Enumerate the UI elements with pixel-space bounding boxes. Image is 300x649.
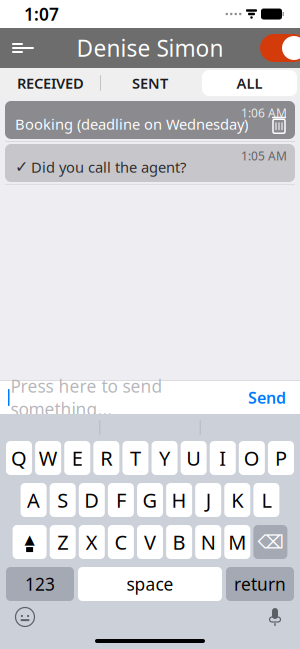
- button[interactable]: Send: [242, 381, 292, 414]
- staticText: B: [173, 529, 186, 555]
- button[interactable]: Y: [152, 441, 178, 475]
- button[interactable]: R: [93, 441, 119, 475]
- staticText: K: [231, 487, 243, 513]
- button[interactable]: P: [268, 441, 294, 475]
- button[interactable]: X: [79, 525, 105, 559]
- staticText: Did you call the agent?: [31, 157, 186, 177]
- staticText: SENT: [132, 73, 168, 93]
- button[interactable]: G: [137, 483, 163, 517]
- button[interactable]: C: [108, 525, 134, 559]
- staticText: D: [84, 487, 99, 513]
- button[interactable]: F: [108, 483, 134, 517]
- button[interactable]: U: [181, 441, 207, 475]
- button[interactable]: Delete: [253, 525, 287, 559]
- staticText: L: [261, 487, 271, 513]
- staticText: Q: [11, 445, 27, 471]
- button[interactable]: 1:06 AM: [0, 101, 300, 139]
- button[interactable]: SENT: [100, 69, 200, 97]
- staticText: ✓: [15, 158, 28, 176]
- staticText: S: [57, 487, 68, 513]
- button[interactable]: return: [226, 567, 294, 601]
- staticText: O: [244, 445, 260, 471]
- staticText: J: [206, 487, 211, 513]
- button[interactable]: Dictate: [258, 600, 292, 634]
- staticText: Press here to send something...: [10, 374, 162, 420]
- button[interactable]: W: [35, 441, 61, 475]
- button[interactable]: O: [239, 441, 265, 475]
- staticText: X: [86, 529, 98, 555]
- staticText: U: [186, 445, 201, 471]
- button[interactable]: 1:05 AM: [0, 144, 300, 182]
- button[interactable]: T: [122, 441, 148, 475]
- button[interactable]: Z: [50, 525, 76, 559]
- staticText: RECEIVED: [17, 73, 84, 93]
- button[interactable]: V: [137, 525, 163, 559]
- staticText: N: [201, 529, 216, 555]
- button[interactable]: D: [79, 483, 105, 517]
- staticText: Y: [159, 445, 170, 471]
- staticText: P: [275, 445, 287, 471]
- button[interactable]: N: [195, 525, 221, 559]
- button[interactable]: space: [78, 567, 222, 601]
- staticText: T: [130, 445, 141, 471]
- button[interactable]: ALL: [200, 69, 299, 97]
- button[interactable]: K: [224, 483, 250, 517]
- button[interactable]: M: [224, 525, 250, 559]
- staticText: ⌫: [257, 531, 283, 553]
- button[interactable]: I: [210, 441, 236, 475]
- staticText: Z: [57, 529, 68, 555]
- button[interactable]: S: [50, 483, 76, 517]
- button[interactable]: RECEIVED: [1, 69, 100, 97]
- staticText: 1:06 AM: [241, 105, 287, 121]
- button[interactable]: Emoji: [8, 600, 42, 634]
- button[interactable]: J: [195, 483, 221, 517]
- staticText: A: [27, 487, 40, 513]
- button[interactable]: B: [166, 525, 192, 559]
- staticText: 1:07: [24, 2, 59, 25]
- staticText: return: [234, 572, 286, 595]
- staticText: E: [72, 445, 83, 471]
- staticText: H: [172, 487, 187, 513]
- button[interactable]: E: [64, 441, 90, 475]
- button[interactable]: 123: [6, 567, 74, 601]
- button[interactable]: Shift: [13, 525, 47, 559]
- button[interactable]: L: [253, 483, 279, 517]
- staticText: M: [228, 529, 246, 555]
- button[interactable]: Toggle: [260, 28, 300, 68]
- staticText: Denise Simon: [76, 33, 223, 63]
- staticText: F: [116, 487, 126, 513]
- staticText: R: [100, 445, 112, 471]
- staticText: W: [39, 445, 58, 471]
- staticText: 1:05 AM: [241, 148, 287, 164]
- button[interactable]: Q: [6, 441, 32, 475]
- staticText: space: [126, 572, 173, 595]
- staticText: ▲: [25, 532, 35, 547]
- staticText: I: [219, 445, 226, 471]
- staticText: Send: [248, 387, 286, 408]
- button[interactable]: H: [166, 483, 192, 517]
- staticText: ALL: [236, 73, 262, 93]
- staticText: V: [144, 529, 156, 555]
- staticText: 123: [25, 572, 55, 595]
- staticText: G: [142, 487, 157, 513]
- staticText: C: [114, 529, 127, 555]
- button[interactable]: A: [21, 483, 47, 517]
- staticText: Booking (deadline on Wednesday): [15, 114, 248, 134]
- button[interactable]: Back: [0, 28, 46, 68]
